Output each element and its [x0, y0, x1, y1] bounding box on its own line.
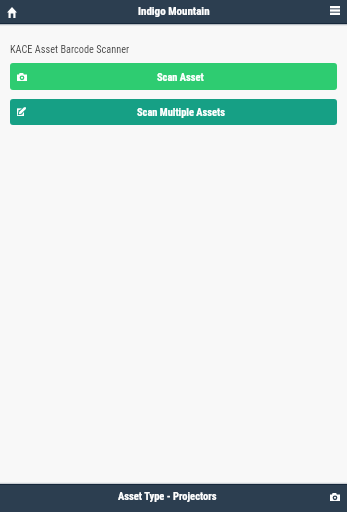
button[interactable]: Scan Multiple Assets	[10, 99, 337, 125]
button[interactable]: Scan Asset	[10, 63, 337, 90]
staticText: Indigo Mountain	[138, 5, 210, 18]
button[interactable]: Camera	[328, 490, 342, 504]
staticText: KACE Asset Barcode Scanner	[10, 43, 130, 55]
button[interactable]: Menu	[328, 3, 342, 17]
staticText: Asset Type - Projectors	[118, 490, 217, 502]
button[interactable]: Home	[5, 5, 19, 19]
staticText: Scan Multiple Assets	[137, 106, 225, 118]
staticText: Scan Asset	[157, 71, 204, 83]
